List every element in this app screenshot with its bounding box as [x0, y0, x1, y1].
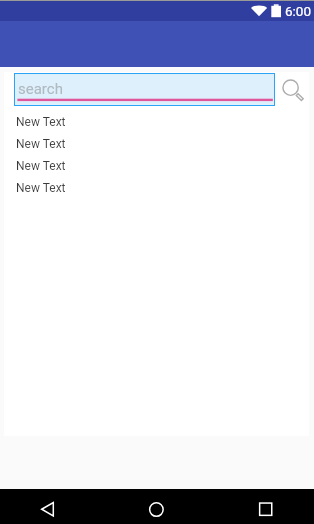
staticText: search: [18, 80, 63, 98]
button[interactable]: New Text: [4, 180, 309, 202]
button[interactable]: New Text: [4, 158, 309, 180]
button[interactable]: Home: [148, 500, 165, 517]
staticText: New Text: [16, 181, 66, 195]
button[interactable]: Back: [40, 501, 56, 517]
staticText: New Text: [16, 159, 66, 173]
button[interactable]: search: [14, 73, 275, 106]
button[interactable]: Recent apps: [257, 500, 274, 517]
button[interactable]: Search: [278, 74, 308, 104]
button[interactable]: New Text: [4, 114, 309, 136]
staticText: New Text: [16, 137, 66, 151]
staticText: New Text: [16, 115, 66, 129]
button[interactable]: New Text: [4, 136, 309, 158]
staticText: 6:00: [285, 3, 312, 19]
